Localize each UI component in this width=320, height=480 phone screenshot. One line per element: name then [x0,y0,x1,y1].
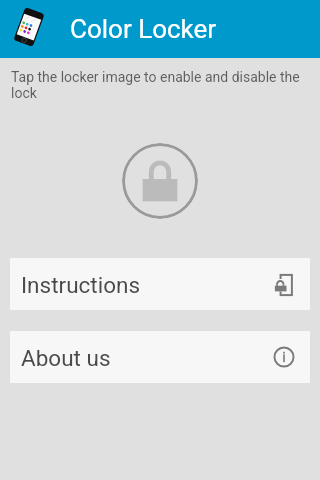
button[interactable]: About us [10,331,310,383]
button[interactable]: Instructions [10,258,310,310]
staticText: Color Locker [70,14,217,44]
staticText: Tap the locker image to enable and disab… [11,69,304,101]
staticText: About us [21,345,111,371]
button[interactable]: Toggle lock [122,143,198,219]
staticText: Instructions [21,272,141,298]
